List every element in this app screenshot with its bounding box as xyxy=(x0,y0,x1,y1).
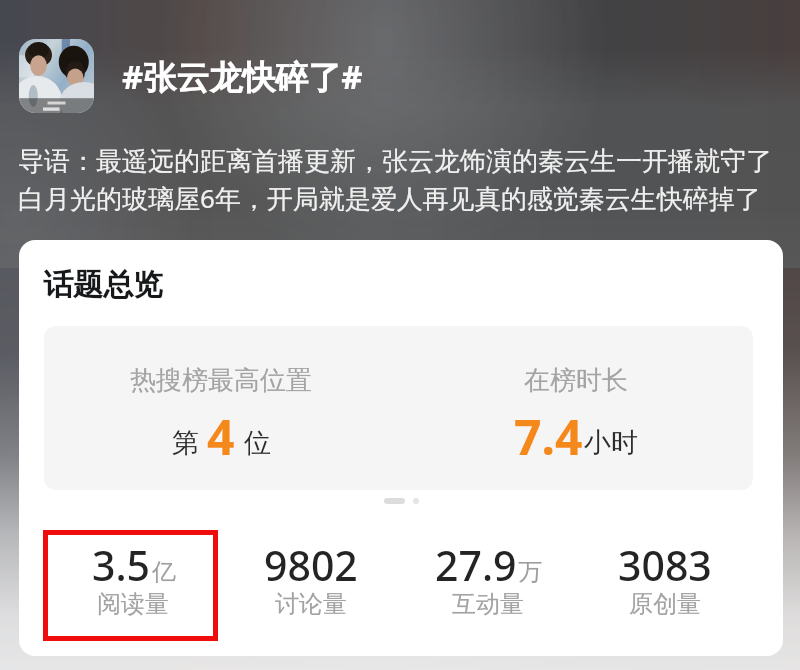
button[interactable]: 9802 xyxy=(222,535,399,631)
button[interactable]: 第 1 页 xyxy=(384,498,405,504)
staticText: 3083 xyxy=(618,537,712,593)
staticText: 9802 xyxy=(264,537,358,593)
button[interactable]: 在榜时长 xyxy=(398,326,753,490)
staticText: 小时 xyxy=(584,426,638,460)
button[interactable]: 3.5 xyxy=(44,535,222,631)
staticText: 3.5 xyxy=(92,537,151,593)
button[interactable]: 热搜榜最高位置 xyxy=(44,326,398,490)
staticText: 导语：最遥远的距离首播更新，张云龙饰演的秦云生一开播就守了白月光的玻璃屋6年，开… xyxy=(18,145,784,216)
button[interactable]: 第 2 页 xyxy=(413,498,419,504)
staticText: 万 xyxy=(518,557,542,587)
button[interactable]: 27.9 xyxy=(399,535,576,631)
staticText: 原创量 xyxy=(629,589,701,619)
staticText: 阅读量 xyxy=(97,589,169,619)
staticText: 位 xyxy=(244,426,271,460)
button[interactable]: #张云龙快碎了# xyxy=(122,54,363,99)
staticText: 在榜时长 xyxy=(524,364,628,397)
staticText: 亿 xyxy=(152,557,176,587)
staticText: 热搜榜最高位置 xyxy=(130,364,312,397)
staticText: 话题总览 xyxy=(43,266,163,304)
button[interactable]: 3083 xyxy=(576,535,753,631)
staticText: 第 xyxy=(172,426,199,460)
staticText: 互动量 xyxy=(452,589,524,619)
staticText: 讨论量 xyxy=(275,589,347,619)
button[interactable]: 话题封面图 xyxy=(19,39,94,113)
staticText: 4 xyxy=(207,404,235,469)
staticText: 7.4 xyxy=(514,404,583,469)
staticText: 27.9 xyxy=(435,537,517,593)
